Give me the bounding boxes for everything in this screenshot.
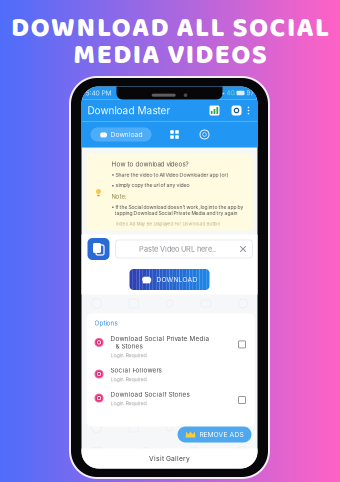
staticText: Login Required [110,400,146,407]
staticText: DOWNLOAD ALL SOCIAL [11,7,329,50]
staticText: Paste Video URL here.. [139,245,216,253]
button[interactable]: DOWNLOAD [129,269,209,290]
button[interactable]: REMOVE ADS [177,426,251,442]
staticText: • Share the video to All Video Downloade… [111,172,228,178]
staticText: Social Followers [110,366,161,374]
button[interactable]: Gallery grid [167,127,181,141]
button[interactable]: Download Socialf Stories [86,388,254,412]
staticText: Options [94,319,117,327]
staticText: DOWNLOAD [156,275,197,284]
staticText: Note: [111,193,126,200]
staticText: Login Required [110,352,146,359]
staticText: • simply copy the url of any video [111,182,189,188]
button[interactable]: Paste Video URL here.. [115,240,252,258]
staticText: 4G [226,89,234,97]
staticText: Download Socialf Stories [110,391,189,398]
staticText: Download Social Private Media [110,335,209,342]
staticText: Download [110,130,142,139]
button[interactable]: More options [241,102,255,118]
button[interactable]: Social Followers [86,363,254,387]
staticText: Video Ad May Be Displayed For Download B… [115,221,220,227]
staticText: tapping Download Social Private Media an… [114,210,237,216]
staticText: REMOVE ADS [199,430,243,439]
staticText: Login Required [110,376,146,383]
staticText: 97 [246,89,253,97]
button[interactable]: Visit Gallery [81,448,257,468]
staticText: How to download videos? [111,160,188,168]
button[interactable]: Download Social Private Media [86,332,254,363]
button[interactable]: Web browser [197,127,211,141]
button[interactable]: Browser [219,105,241,115]
staticText: Visit Gallery [149,454,190,463]
staticText: • If the Social download doesn't work, l… [111,204,243,210]
staticText: Download Master [87,104,170,117]
staticText: ◂▸ [218,89,224,97]
button[interactable]: Paste from clipboard [87,238,109,260]
staticText: MEDIA VIDEOS [73,34,267,77]
staticText: 5:40 PM [85,89,111,97]
button[interactable]: Statistics [209,105,219,115]
button[interactable]: Download [90,127,151,142]
staticText: & Stories [115,342,142,350]
